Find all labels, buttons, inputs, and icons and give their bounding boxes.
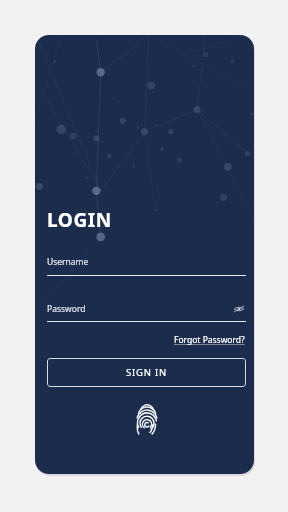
button[interactable]: SIGN IN bbox=[47, 358, 246, 387]
staticText: Forgot Password? bbox=[174, 334, 245, 346]
staticText: Username bbox=[47, 256, 89, 268]
staticText: SIGN IN bbox=[126, 366, 168, 379]
button[interactable]: Password bbox=[47, 302, 246, 322]
button[interactable]: Sign in with fingerprint bbox=[130, 405, 164, 439]
staticText: Password bbox=[47, 303, 86, 315]
staticText: LOGIN bbox=[47, 207, 112, 233]
button[interactable]: Forgot Password? bbox=[173, 333, 246, 347]
button[interactable]: Show password bbox=[232, 302, 246, 316]
button[interactable]: Username bbox=[47, 256, 246, 276]
